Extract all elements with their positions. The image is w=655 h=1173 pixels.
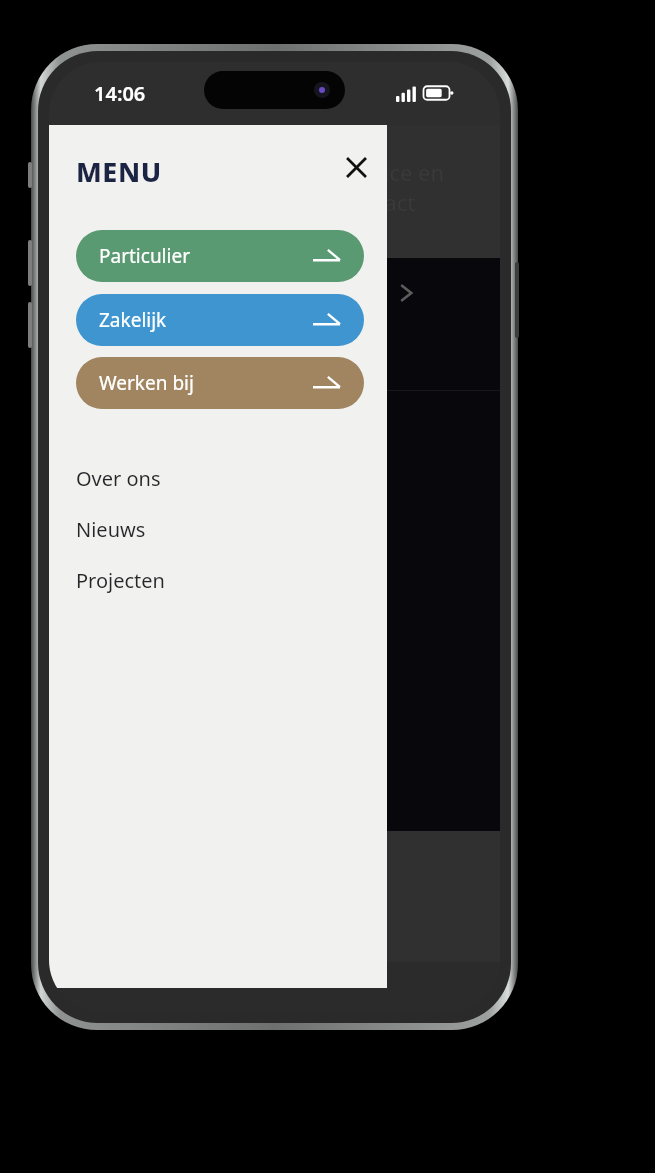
staticText: Projecten <box>76 567 165 594</box>
staticText: n advies <box>289 279 371 308</box>
staticText: Nieuws <box>76 516 146 543</box>
staticText: Werken bij <box>99 370 194 396</box>
staticText: MENU <box>76 153 162 190</box>
button[interactable]: Over ons <box>76 461 256 495</box>
button[interactable]: Nieuws <box>76 512 256 546</box>
staticText: Zakelijk <box>99 307 167 333</box>
button[interactable]: Projecten <box>76 563 256 597</box>
button[interactable]: Zakelijk <box>76 294 364 346</box>
button[interactable]: Sluiten <box>334 145 378 189</box>
staticText: Particulier <box>99 243 190 269</box>
button[interactable]: n advies <box>289 262 499 324</box>
button[interactable]: Particulier <box>76 230 364 282</box>
staticText: Service en contact <box>339 157 445 218</box>
staticText: Over ons <box>76 465 161 492</box>
button[interactable]: Werken bij <box>76 357 364 409</box>
staticText: 14:06 <box>94 80 146 107</box>
